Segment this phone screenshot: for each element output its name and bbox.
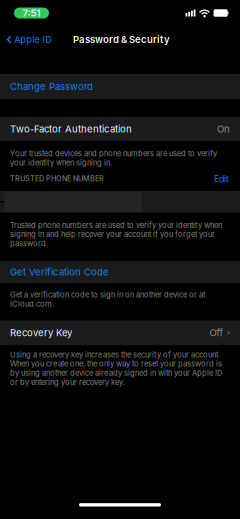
staticText: Your trusted devices and phone numbers a… <box>10 149 217 158</box>
staticText: 7:51 <box>22 7 40 19</box>
staticText: Get a verification code to sign in on an… <box>10 290 205 299</box>
staticText: by using another device already signed i… <box>10 368 222 378</box>
button[interactable] <box>0 191 240 212</box>
button[interactable]: Recovery Key <box>0 320 240 345</box>
button[interactable]: Apple ID <box>0 26 62 53</box>
staticText: password. <box>10 239 48 248</box>
staticText: TRUSTED PHONE NUMBER <box>10 174 104 183</box>
staticText: Password & Security <box>73 34 170 45</box>
staticText: When you create one, the only way to res… <box>10 359 222 368</box>
staticText: your identity when signing in. <box>10 158 112 167</box>
staticText: Get Verification Code <box>10 266 109 278</box>
staticText: or by entering your recovery key. <box>10 378 125 387</box>
staticText: Off <box>209 327 223 339</box>
button[interactable]: Two-Factor Authentication <box>0 117 240 141</box>
button[interactable]: Change Password <box>0 74 240 99</box>
staticText: Recovery Key <box>10 327 72 339</box>
staticText: Trusted phone numbers are used to verify… <box>10 220 222 230</box>
staticText: Two-Factor Authentication <box>10 123 132 135</box>
staticText: iCloud.com. <box>10 299 54 308</box>
staticText: On <box>217 123 230 135</box>
staticText: Apple ID <box>14 34 52 45</box>
button[interactable]: Edit <box>206 173 229 184</box>
button[interactable]: Get Verification Code <box>0 261 240 283</box>
staticText: signing in and help recover your account… <box>10 230 215 239</box>
staticText: Using a recovery key increases the secur… <box>10 350 220 359</box>
staticText: Edit <box>214 173 229 184</box>
staticText: Change Password <box>10 81 93 92</box>
